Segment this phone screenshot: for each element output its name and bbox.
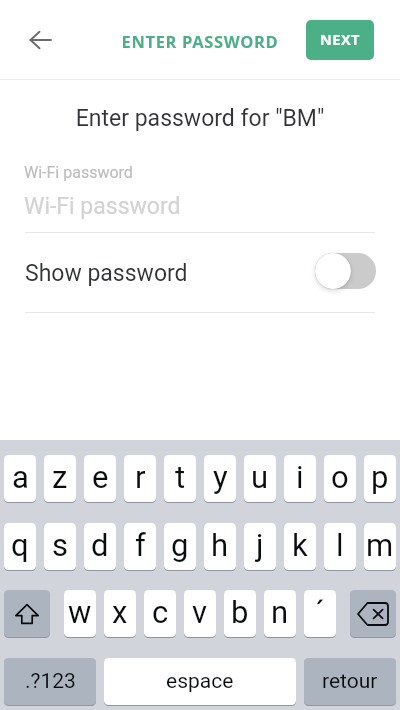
button[interactable]: d xyxy=(84,523,116,570)
staticText: Enter password for "BM" xyxy=(0,105,400,132)
staticText: f xyxy=(135,527,146,563)
staticText: retour xyxy=(322,669,378,694)
staticText: x xyxy=(112,594,128,630)
button[interactable]: r xyxy=(124,455,156,502)
button[interactable]: g xyxy=(164,523,196,570)
button[interactable]: Backspace xyxy=(350,590,396,637)
button[interactable]: s xyxy=(44,523,76,570)
button[interactable]: p xyxy=(364,455,396,502)
staticText: i xyxy=(296,459,304,495)
button[interactable]: j xyxy=(244,523,276,570)
staticText: p xyxy=(371,459,389,495)
button[interactable]: Show password xyxy=(0,240,400,306)
button[interactable]: NEXT xyxy=(306,20,374,60)
staticText: s xyxy=(52,527,68,563)
staticText: ENTER PASSWORD xyxy=(0,30,400,52)
button[interactable]: i xyxy=(284,455,316,502)
staticText: g xyxy=(171,527,189,563)
staticText: .?123 xyxy=(25,669,76,694)
button[interactable]: b xyxy=(224,590,256,637)
button[interactable]: .?123 xyxy=(4,658,96,705)
button[interactable]: ´ xyxy=(304,590,336,637)
button[interactable]: v xyxy=(184,590,216,637)
button[interactable]: q xyxy=(4,523,36,570)
staticText: ´ xyxy=(315,594,325,630)
staticText: j xyxy=(256,527,264,563)
staticText: w xyxy=(68,594,92,630)
staticText: o xyxy=(331,459,349,495)
button[interactable]: n xyxy=(264,590,296,637)
button[interactable]: k xyxy=(284,523,316,570)
staticText: h xyxy=(211,527,229,563)
button[interactable]: a xyxy=(4,455,36,502)
button[interactable]: h xyxy=(204,523,236,570)
button[interactable]: l xyxy=(324,523,356,570)
staticText: q xyxy=(11,527,29,563)
staticText: b xyxy=(231,594,249,630)
staticText: NEXT xyxy=(320,30,360,50)
staticText: Wi-Fi password xyxy=(24,163,133,182)
button[interactable]: e xyxy=(84,455,116,502)
staticText: r xyxy=(135,459,146,495)
button[interactable]: w xyxy=(64,590,96,637)
button[interactable]: Back xyxy=(18,23,52,57)
button[interactable]: u xyxy=(244,455,276,502)
button[interactable]: y xyxy=(204,455,236,502)
staticText: t xyxy=(175,459,186,495)
button[interactable]: z xyxy=(44,455,76,502)
staticText: k xyxy=(292,527,308,563)
staticText: z xyxy=(52,459,68,495)
button[interactable]: retour xyxy=(304,658,396,705)
staticText: y xyxy=(213,459,228,495)
button[interactable]: Show password toggle xyxy=(315,253,376,289)
staticText: u xyxy=(251,459,269,495)
staticText: Show password xyxy=(25,260,188,287)
button[interactable]: o xyxy=(324,455,356,502)
button[interactable]: Shift xyxy=(4,590,50,637)
button[interactable]: espace xyxy=(104,658,296,705)
staticText: a xyxy=(12,459,29,495)
staticText: espace xyxy=(166,669,234,694)
button[interactable]: m xyxy=(364,523,396,570)
staticText: e xyxy=(92,459,109,495)
button[interactable]: t xyxy=(164,455,196,502)
staticText: m xyxy=(366,527,394,563)
button[interactable]: f xyxy=(124,523,156,570)
staticText: n xyxy=(271,594,289,630)
staticText: v xyxy=(192,594,208,630)
button[interactable]: c xyxy=(144,590,176,637)
button[interactable]: x xyxy=(104,590,136,637)
staticText: Wi-Fi password xyxy=(24,193,181,220)
staticText: l xyxy=(336,527,344,563)
staticText: c xyxy=(152,594,169,630)
staticText: d xyxy=(91,527,109,563)
